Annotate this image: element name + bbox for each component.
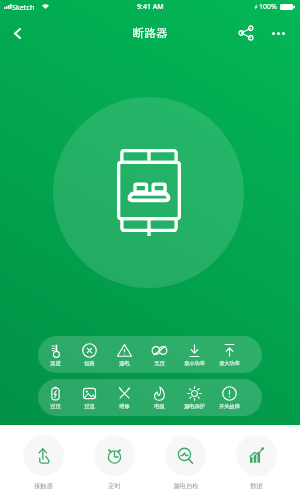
button[interactable]: 漏电 <box>107 336 142 373</box>
staticText: 过压 <box>50 403 61 410</box>
button[interactable]: 温度 <box>38 336 72 373</box>
staticText: 最大功率 <box>219 360 240 367</box>
button[interactable]: More options <box>262 17 294 49</box>
button[interactable]: 定时 <box>94 425 135 490</box>
button[interactable]: Back <box>0 16 35 51</box>
button[interactable]: 最小功率 <box>177 336 212 373</box>
staticText: 定时 <box>108 482 121 490</box>
staticText: 接触器 <box>34 482 53 490</box>
staticText: 100% <box>259 2 277 12</box>
button[interactable]: 过流 <box>72 379 107 416</box>
staticText: 断路器 <box>133 26 168 40</box>
staticText: 维修 <box>119 403 130 410</box>
button[interactable]: 短路 <box>72 336 107 373</box>
staticText: 无压 <box>154 360 165 367</box>
staticText: 开关故障 <box>219 403 240 410</box>
button[interactable]: 漏电保护 <box>177 379 212 416</box>
staticText: Sketch <box>12 2 35 12</box>
button[interactable]: 最大功率 <box>212 336 247 373</box>
button[interactable]: 数据 <box>236 425 277 490</box>
staticText: 短路 <box>84 360 95 367</box>
staticText: 过流 <box>84 403 95 410</box>
button[interactable]: Share <box>230 17 262 49</box>
button[interactable]: 接触器 <box>23 425 64 490</box>
staticText: 最小功率 <box>184 360 205 367</box>
staticText: 9:41 AM <box>137 2 164 12</box>
staticText: 漏电自检 <box>173 482 199 490</box>
staticText: 电弧 <box>154 403 165 410</box>
button[interactable]: 开关故障 <box>212 379 247 416</box>
staticText: 漏电 <box>119 360 130 367</box>
button[interactable]: 过压 <box>38 379 72 416</box>
button[interactable]: 无压 <box>142 336 177 373</box>
button[interactable]: 电弧 <box>142 379 177 416</box>
staticText: 温度 <box>50 360 61 367</box>
staticText: 数据 <box>250 482 263 490</box>
button[interactable]: 漏电自检 <box>165 425 206 490</box>
staticText: 漏电保护 <box>184 403 205 410</box>
button[interactable]: 维修 <box>107 379 142 416</box>
